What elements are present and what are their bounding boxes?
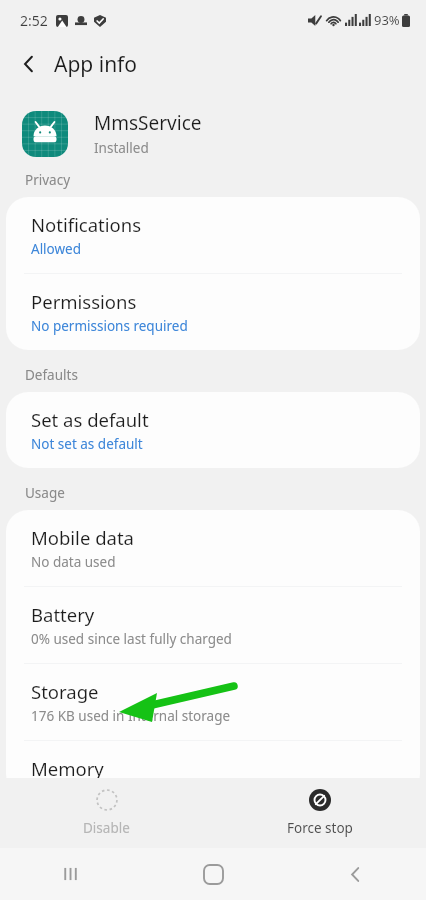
staticText: Notifications <box>31 212 142 237</box>
button[interactable]: Recents <box>0 848 142 900</box>
staticText: Allowed <box>31 240 82 258</box>
staticText: Permissions <box>31 289 137 314</box>
button[interactable]: Home <box>142 848 284 900</box>
button[interactable]: Set as default <box>6 392 420 468</box>
button[interactable]: Memory <box>6 741 420 796</box>
button[interactable]: Storage <box>6 664 420 740</box>
staticText: Usage <box>25 484 65 502</box>
button[interactable]: Permissions <box>6 274 420 350</box>
staticText: Battery <box>31 602 95 627</box>
staticText: Set as default <box>31 407 149 432</box>
button[interactable]: Force stop <box>213 778 426 848</box>
staticText: 93% <box>374 11 400 29</box>
staticText: Not set as default <box>31 435 143 453</box>
staticText: 176 KB used in Internal storage <box>31 707 231 725</box>
staticText: Force stop <box>287 819 353 837</box>
staticText: No data used <box>31 553 116 571</box>
staticText: 2:52 <box>20 11 48 30</box>
staticText: App info <box>54 50 138 79</box>
button[interactable]: Back <box>284 848 426 900</box>
button[interactable]: Disable <box>0 778 213 848</box>
staticText: Disable <box>83 819 130 837</box>
staticText: Memory <box>31 756 104 781</box>
button[interactable]: Battery <box>6 587 420 663</box>
button[interactable]: Mobile data <box>6 510 420 586</box>
staticText: No permissions required <box>31 317 188 335</box>
staticText: Storage <box>31 679 99 704</box>
staticText: Defaults <box>25 366 78 384</box>
staticText: Mobile data <box>31 525 134 550</box>
button[interactable]: Notifications <box>6 197 420 273</box>
staticText: MmsService <box>94 110 202 136</box>
button[interactable]: Back <box>13 48 45 80</box>
staticText: 0% used since last fully charged <box>31 630 232 648</box>
staticText: Installed <box>94 139 149 157</box>
staticText: Privacy <box>25 171 71 189</box>
